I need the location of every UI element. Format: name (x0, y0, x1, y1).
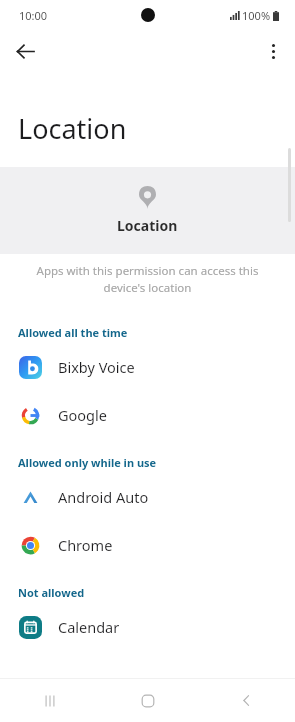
button[interactable]: Back (7, 33, 43, 69)
staticText: 100% (242, 8, 271, 23)
button[interactable]: Calendar (0, 603, 295, 651)
staticText: Google (58, 405, 107, 425)
staticText: Chrome (58, 535, 113, 555)
staticText: Bixby Voice (58, 357, 135, 377)
button[interactable]: Location (0, 167, 295, 254)
button[interactable]: Android Auto (0, 473, 295, 521)
staticText: Location (117, 216, 178, 235)
button[interactable]: More options (256, 34, 290, 68)
staticText: 10:00 (19, 8, 48, 23)
staticText: Apps with this permission can access thi… (22, 263, 273, 295)
button[interactable]: Bixby Voice (0, 343, 295, 391)
button[interactable]: Google (0, 391, 295, 439)
button[interactable]: Back (197, 679, 295, 722)
button[interactable]: Home (99, 679, 197, 722)
button[interactable]: Recents (0, 679, 99, 722)
button[interactable]: Chrome (0, 521, 295, 569)
staticText: Android Auto (58, 487, 149, 507)
staticText: Location (18, 110, 127, 147)
staticText: Allowed only while in use (18, 455, 157, 470)
staticText: Calendar (58, 617, 120, 637)
staticText: Allowed all the time (18, 325, 128, 340)
staticText: Not allowed (18, 585, 85, 600)
